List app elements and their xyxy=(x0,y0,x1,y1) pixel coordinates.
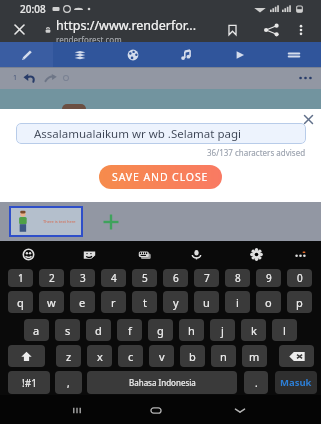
staticText: 5 xyxy=(142,271,148,285)
button[interactable]: q xyxy=(8,291,33,313)
button[interactable]: x xyxy=(87,345,112,367)
button[interactable]: d xyxy=(86,319,111,341)
staticText: z xyxy=(66,349,72,364)
staticText: n xyxy=(220,349,227,364)
button[interactable]: Stickers xyxy=(75,241,103,268)
button[interactable]: l xyxy=(272,319,297,341)
button[interactable]: More xyxy=(292,67,318,89)
staticText: 20:08 xyxy=(20,2,46,16)
button[interactable]: Menu xyxy=(267,42,321,67)
button[interactable]: Emoji xyxy=(14,241,42,268)
staticText: k xyxy=(251,323,257,338)
button[interactable]: Bookmark xyxy=(211,17,253,42)
staticText: t xyxy=(143,295,147,310)
button[interactable]: Undo xyxy=(18,67,40,89)
button[interactable]: More xyxy=(286,241,314,268)
button[interactable]: v xyxy=(149,345,174,367)
staticText: 36/137 characters advised xyxy=(207,147,306,158)
button[interactable]: Play xyxy=(213,42,267,67)
button[interactable]: Assalamualaikum wr wb .Selamat pagi xyxy=(16,123,306,144)
button[interactable]: 8 xyxy=(225,269,250,287)
button[interactable]: t xyxy=(132,291,157,313)
button[interactable]: , xyxy=(55,371,82,394)
button[interactable]: Edit xyxy=(0,42,53,67)
button[interactable]: 2 xyxy=(39,269,64,287)
button[interactable]: c xyxy=(118,345,143,367)
staticText: . xyxy=(255,376,258,390)
staticText: a xyxy=(33,323,40,338)
staticText: g xyxy=(157,323,164,338)
button[interactable]: m xyxy=(242,345,267,367)
button[interactable]: u xyxy=(194,291,219,313)
staticText: e xyxy=(79,295,86,310)
button[interactable]: Shift xyxy=(8,345,45,367)
button[interactable]: j xyxy=(210,319,235,341)
button[interactable]: b xyxy=(180,345,205,367)
button[interactable]: . xyxy=(244,371,268,394)
button[interactable]: 0 xyxy=(287,269,312,287)
button[interactable]: Bahasa Indonesia xyxy=(87,371,237,394)
button[interactable]: f xyxy=(117,319,142,341)
button[interactable]: 5 xyxy=(132,269,157,287)
button[interactable]: 7 xyxy=(194,269,219,287)
button[interactable]: z xyxy=(56,345,81,367)
staticText: o xyxy=(265,295,272,310)
button[interactable]: Layers xyxy=(53,42,106,67)
button[interactable]: i xyxy=(225,291,250,313)
button[interactable]: n xyxy=(211,345,236,367)
button[interactable]: Home xyxy=(142,396,170,424)
staticText: https://www.renderfor... xyxy=(56,17,197,34)
button[interactable]: Backspace xyxy=(279,345,314,367)
button[interactable]: Redo xyxy=(40,67,62,89)
staticText: b xyxy=(189,349,196,364)
button[interactable]: a xyxy=(24,319,49,341)
button[interactable]: Back xyxy=(226,396,254,424)
staticText: 1 xyxy=(18,271,24,285)
button[interactable]: Clipboard xyxy=(130,241,158,268)
staticText: Bahasa Indonesia xyxy=(129,377,196,388)
button[interactable]: Settings xyxy=(242,241,270,268)
button[interactable]: More options xyxy=(289,17,312,42)
button[interactable]: 3 xyxy=(70,269,95,287)
staticText: Masuk xyxy=(280,376,312,389)
button[interactable]: e xyxy=(70,291,95,313)
staticText: 2 xyxy=(49,271,55,285)
button[interactable]: w xyxy=(39,291,64,313)
button[interactable]: g xyxy=(148,319,173,341)
button[interactable]: p xyxy=(287,291,312,313)
button[interactable]: Recent apps xyxy=(63,396,91,424)
staticText: h xyxy=(188,323,195,338)
staticText: x xyxy=(97,349,103,364)
button[interactable]: s xyxy=(55,319,80,341)
button[interactable]: SAVE AND CLOSE xyxy=(99,165,222,189)
button[interactable]: There is text here xyxy=(11,208,81,235)
staticText: There is text here xyxy=(43,219,76,224)
button[interactable]: !#1 xyxy=(8,371,50,394)
button[interactable]: r xyxy=(101,291,126,313)
button[interactable]: Add scene xyxy=(97,208,125,236)
staticText: !#1 xyxy=(22,376,37,390)
staticText: c xyxy=(128,349,134,364)
button[interactable]: Colors xyxy=(106,42,159,67)
button[interactable]: 9 xyxy=(256,269,281,287)
button[interactable]: h xyxy=(179,319,204,341)
button[interactable]: 6 xyxy=(163,269,188,287)
button[interactable]: o xyxy=(256,291,281,313)
button[interactable]: Voice input xyxy=(182,241,210,268)
button[interactable]: 4 xyxy=(101,269,126,287)
button[interactable]: Share xyxy=(253,17,289,42)
button[interactable]: Close dialog xyxy=(301,112,315,126)
button[interactable]: Close xyxy=(0,17,38,42)
staticText: d xyxy=(95,323,102,338)
staticText: 6 xyxy=(173,271,179,285)
staticText: s xyxy=(65,323,71,338)
staticText: renderforest.com xyxy=(56,34,122,42)
button[interactable]: k xyxy=(241,319,266,341)
staticText: q xyxy=(17,295,24,310)
button[interactable]: 1 xyxy=(8,269,33,287)
button[interactable]: Music xyxy=(159,42,213,67)
staticText: u xyxy=(203,295,210,310)
button[interactable]: Masuk xyxy=(275,371,317,394)
staticText: Assalamualaikum wr wb .Selamat pagi xyxy=(34,126,242,142)
button[interactable]: y xyxy=(163,291,188,313)
